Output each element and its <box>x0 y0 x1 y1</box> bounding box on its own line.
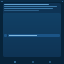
button[interactable]: Open item <box>3 13 61 57</box>
button[interactable]: Home <box>12 59 17 64</box>
button[interactable]: Search <box>30 59 35 64</box>
button[interactable] <box>8 34 60 37</box>
button[interactable]: Open item <box>4 34 7 37</box>
button[interactable]: Profile <box>47 59 52 64</box>
